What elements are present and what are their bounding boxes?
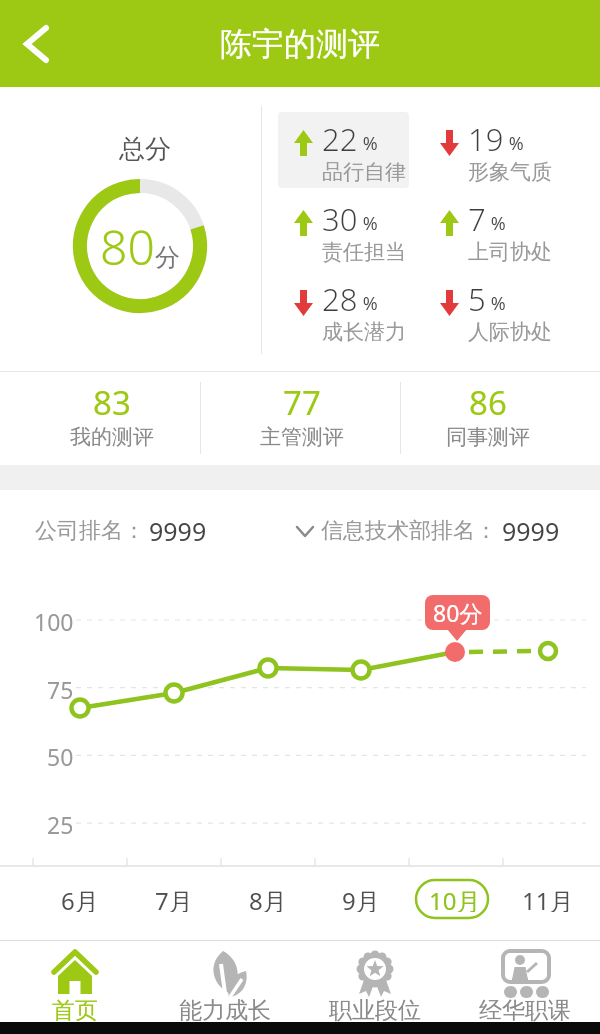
staticText: 6月 (61, 884, 99, 912)
button[interactable]: 28 (278, 272, 409, 348)
staticText: 陈宇的测评 (220, 24, 380, 64)
staticText: 5 (468, 278, 486, 320)
staticText: 75 (47, 674, 74, 702)
staticText: 信息技术部排名： (321, 517, 497, 545)
staticText: 形象气质 (468, 159, 552, 185)
staticText: 人际协处 (468, 319, 552, 345)
staticText: 22 (322, 118, 358, 160)
staticText: 80 (100, 214, 155, 279)
staticText: 25 (47, 809, 74, 837)
staticText: 7月 (155, 884, 193, 912)
staticText: 19 (468, 118, 504, 160)
staticText: % (358, 131, 378, 156)
staticText: 公司排名： (35, 517, 145, 545)
staticText: 分 (155, 242, 180, 273)
staticText: 能力成长 (179, 996, 271, 1022)
staticText: % (504, 131, 524, 156)
staticText: 9999 (149, 514, 207, 548)
staticText: 职业段位 (329, 996, 421, 1022)
button[interactable]: 5 (424, 272, 555, 348)
button[interactable] (0, 0, 70, 87)
staticText: 80分 (433, 597, 483, 628)
staticText: 成长潜力 (322, 319, 406, 345)
staticText: 86 (469, 380, 507, 424)
staticText: % (358, 211, 378, 236)
staticText: 8月 (249, 884, 287, 912)
button[interactable]: 经华职课 (450, 941, 600, 1022)
staticText: 77 (283, 380, 321, 424)
button[interactable]: 职业段位 (300, 941, 450, 1022)
staticText: 30 (322, 198, 358, 240)
staticText: 责任担当 (322, 239, 406, 265)
staticText: 11月 (522, 884, 574, 912)
staticText: 100 (34, 606, 74, 634)
staticText: 品行自律 (322, 159, 406, 185)
button[interactable]: 首页 (0, 941, 150, 1022)
staticText: 9月 (342, 884, 380, 912)
button[interactable]: 22 (278, 112, 409, 188)
staticText: 50 (47, 741, 74, 769)
staticText: 经华职课 (479, 996, 571, 1022)
button[interactable]: 10月 (415, 884, 495, 912)
button[interactable]: 19 (424, 112, 555, 188)
staticText: % (486, 211, 506, 236)
button[interactable]: 信息技术部排名： (296, 514, 560, 548)
button[interactable]: 7 (424, 192, 555, 268)
staticText: 首页 (52, 996, 98, 1022)
staticText: 7 (468, 198, 486, 240)
staticText: 9999 (502, 514, 560, 548)
staticText: 同事测评 (446, 424, 530, 450)
staticText: 上司协处 (468, 239, 552, 265)
staticText: % (358, 291, 378, 316)
button[interactable]: 30 (278, 192, 409, 268)
staticText: 83 (93, 380, 131, 424)
staticText: 我的测评 (70, 424, 154, 450)
staticText: 10月 (429, 884, 481, 912)
staticText: % (486, 291, 506, 316)
staticText: 主管测评 (260, 424, 344, 450)
button[interactable]: 能力成长 (150, 941, 300, 1022)
staticText: 总分 (119, 133, 171, 165)
staticText: 28 (322, 278, 358, 320)
